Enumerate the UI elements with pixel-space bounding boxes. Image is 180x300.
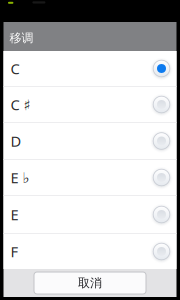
staticText: C ♯ bbox=[10, 95, 30, 114]
staticText: D bbox=[10, 131, 21, 151]
button[interactable]: C ♯ bbox=[3, 87, 176, 123]
staticText: 移调 bbox=[9, 31, 33, 45]
button[interactable]: E bbox=[3, 196, 176, 234]
staticText: E ♭ bbox=[10, 168, 29, 187]
staticText: F bbox=[10, 242, 18, 261]
button[interactable]: 取消 bbox=[34, 272, 146, 294]
button[interactable]: F bbox=[3, 234, 176, 269]
staticText: 取消 bbox=[78, 276, 102, 290]
staticText: E bbox=[10, 205, 18, 224]
button[interactable]: C bbox=[3, 51, 176, 87]
button[interactable]: E ♭ bbox=[3, 160, 176, 196]
staticText: C bbox=[10, 59, 19, 78]
button[interactable]: D bbox=[3, 123, 176, 160]
